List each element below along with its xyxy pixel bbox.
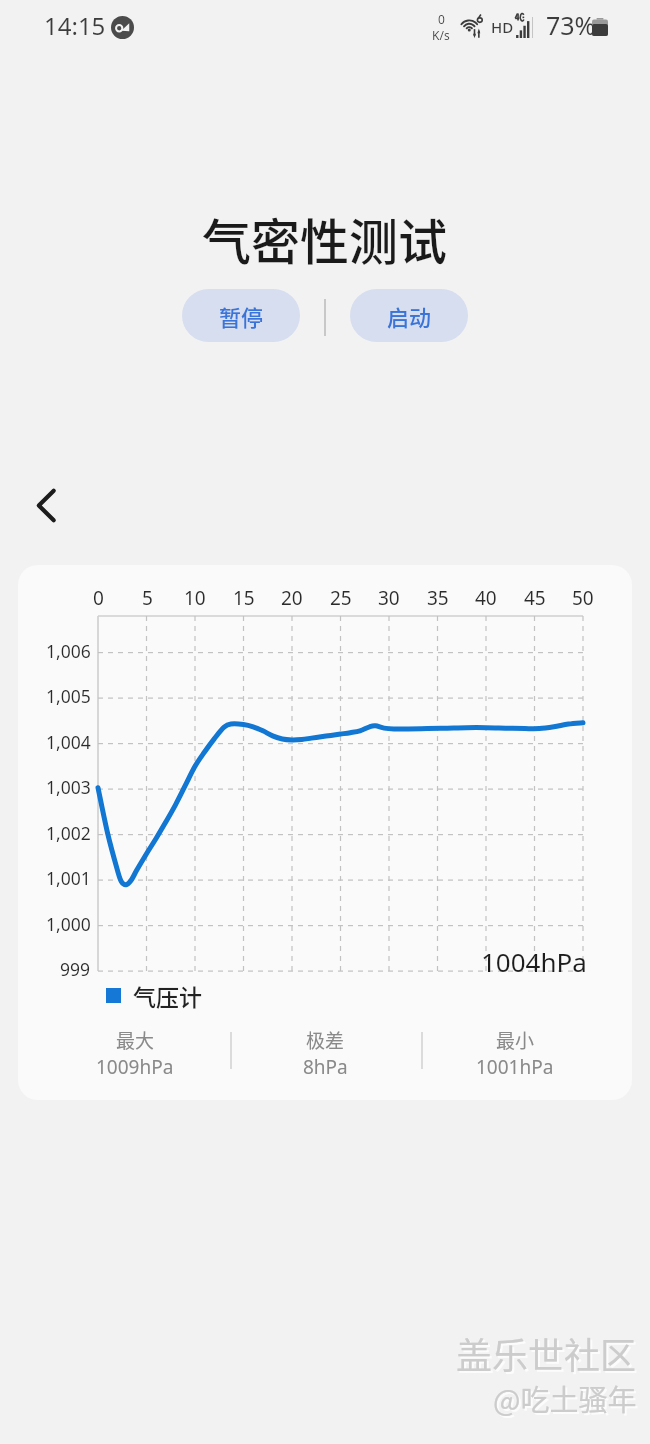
staticText: 1004hPa (481, 944, 587, 979)
staticText: 1,006 (46, 639, 91, 663)
staticText: 盖乐世社区 (456, 1327, 637, 1379)
staticText: 0 (438, 11, 445, 27)
staticText: 1,003 (46, 775, 91, 799)
staticText: 10 (184, 585, 206, 611)
staticText: 1,002 (46, 821, 91, 845)
staticText: 40 (475, 585, 497, 611)
staticText: 20 (281, 585, 303, 611)
staticText: 14:15 (44, 9, 106, 42)
button[interactable]: 启动 (350, 289, 468, 342)
staticText: 45 (524, 585, 546, 611)
button[interactable]: Back (24, 483, 68, 527)
staticText: 35 (427, 585, 449, 611)
staticText: 8hPa (303, 1054, 348, 1080)
staticText: 73% (546, 8, 596, 42)
staticText: @吃土骚年 (493, 1377, 637, 1419)
staticText: 最大 (116, 1026, 155, 1054)
staticText: 5 (142, 585, 153, 611)
staticText: 启动 (387, 300, 432, 332)
button[interactable]: 暂停 (182, 289, 300, 342)
staticText: 暂停 (219, 300, 264, 332)
staticText: @吃土骚年 (495, 1379, 639, 1421)
staticText: 气压计 (133, 979, 202, 1012)
staticText: 1001hPa (476, 1054, 554, 1080)
staticText: 30 (378, 585, 400, 611)
staticText: 1,001 (46, 866, 91, 890)
staticText: 15 (233, 585, 255, 611)
staticText: 盖乐世社区 (458, 1329, 639, 1381)
staticText: HD (491, 17, 514, 37)
staticText: 1,005 (46, 684, 91, 708)
staticText: K/s (432, 27, 450, 43)
staticText: 50 (572, 585, 594, 611)
staticText: 999 (60, 957, 91, 981)
staticText: 25 (330, 585, 352, 611)
staticText: 气密性测试 (202, 203, 448, 274)
other: Notification (111, 16, 134, 39)
staticText: 0 (93, 585, 104, 611)
button[interactable]: 0 (18, 565, 632, 1100)
staticText: 1009hPa (96, 1054, 174, 1080)
staticText: 1,004 (46, 730, 91, 754)
staticText: 极差 (306, 1026, 345, 1054)
staticText: 最小 (496, 1026, 535, 1054)
staticText: 1,000 (46, 912, 91, 936)
